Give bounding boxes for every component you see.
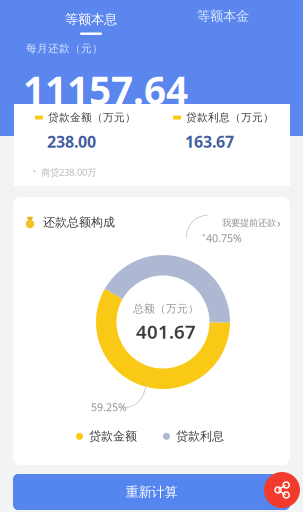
staticText: 重新计算 bbox=[125, 484, 177, 500]
staticText: 每月还款（元） bbox=[26, 42, 103, 55]
staticText: 163.67 bbox=[185, 131, 234, 152]
staticText: 401.67 bbox=[136, 319, 196, 344]
staticText: 贷款利息（万元） bbox=[186, 111, 274, 124]
staticText: 商贷238.00万 bbox=[41, 166, 96, 178]
staticText: 贷款金额 bbox=[89, 429, 137, 444]
staticText: 238.00 bbox=[47, 131, 96, 152]
staticText: 贷款金额（万元） bbox=[48, 111, 136, 124]
staticText: ＊ bbox=[31, 168, 38, 176]
staticText: 总额（万元） bbox=[133, 302, 199, 315]
staticText: 还款总额构成 bbox=[43, 215, 115, 230]
button[interactable]: 重新计算 bbox=[13, 474, 290, 510]
staticText: 贷款利息 bbox=[176, 429, 224, 444]
button[interactable]: Share bbox=[264, 472, 300, 508]
button[interactable]: 等额本金 bbox=[168, 9, 278, 23]
button[interactable]: 等额本息 bbox=[36, 9, 146, 37]
button[interactable]: 我要提前还款 bbox=[222, 215, 281, 231]
staticText: 59.25% bbox=[91, 400, 127, 414]
staticText: 等额本息 bbox=[65, 11, 117, 27]
staticText: 11157.64 bbox=[23, 64, 188, 115]
staticText: 我要提前还款 bbox=[222, 217, 276, 229]
staticText: 等额本金 bbox=[197, 8, 249, 24]
staticText: › bbox=[277, 215, 281, 231]
staticText: 40.75% bbox=[206, 231, 242, 245]
